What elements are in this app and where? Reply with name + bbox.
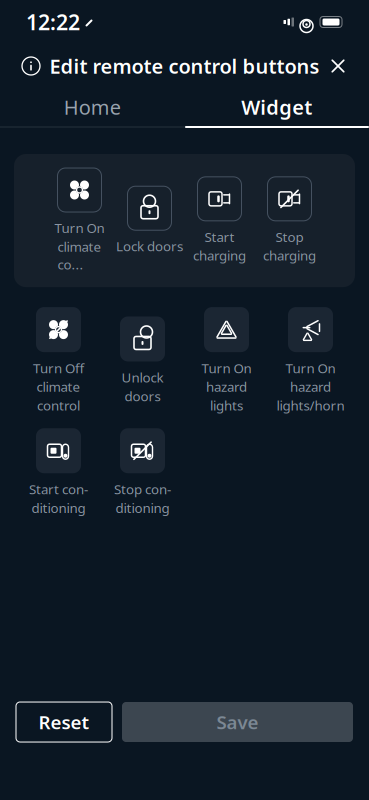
button[interactable]: Home <box>0 88 184 126</box>
staticText: climate co... <box>57 238 101 273</box>
button[interactable]: Save <box>122 702 353 742</box>
staticText: Start <box>204 228 234 246</box>
button[interactable]: Turn Off <box>16 307 100 414</box>
button[interactable]: Lock doors <box>114 186 184 255</box>
button[interactable]: Start <box>184 177 254 264</box>
staticText: Stop <box>275 228 303 246</box>
staticText: lights <box>210 396 243 414</box>
staticText: lights/horn <box>276 396 344 414</box>
staticText: Unlock <box>121 368 163 386</box>
button[interactable]: Information <box>14 49 48 83</box>
staticText: Turn On <box>54 219 104 237</box>
button[interactable]: Stop <box>254 177 324 264</box>
button[interactable]: Start con- <box>16 428 100 517</box>
staticText: 12:22 <box>26 8 80 36</box>
button[interactable]: Close <box>321 49 355 83</box>
staticText: Home <box>64 94 121 120</box>
staticText: Stop con- <box>114 480 171 498</box>
staticText: charging <box>263 247 316 264</box>
staticText: Edit remote control buttons <box>49 53 319 79</box>
staticText: ditioning <box>115 499 169 517</box>
staticText: Lock doors <box>116 237 183 255</box>
button[interactable]: Widget <box>184 88 369 126</box>
staticText: Start con- <box>29 480 88 498</box>
button[interactable]: Turn On <box>184 307 268 414</box>
staticText: climate <box>36 378 80 395</box>
button[interactable]: Unlock <box>100 316 184 405</box>
staticText: charging <box>193 247 246 264</box>
button[interactable]: Turn On <box>268 307 352 414</box>
staticText: control <box>37 396 80 414</box>
staticText: Save <box>216 710 258 734</box>
staticText: hazard <box>206 378 247 395</box>
button[interactable]: Stop con- <box>100 428 184 517</box>
staticText: ditioning <box>31 499 85 517</box>
staticText: Turn On <box>285 359 335 377</box>
staticText: doors <box>124 387 160 405</box>
staticText: Turn Off <box>33 359 84 377</box>
staticText: Widget <box>241 94 312 120</box>
button[interactable]: Reset <box>16 702 112 742</box>
staticText: Turn On <box>201 359 251 377</box>
staticText: Reset <box>38 710 89 734</box>
staticText: hazard <box>290 378 331 395</box>
button[interactable]: Turn On <box>44 168 114 273</box>
